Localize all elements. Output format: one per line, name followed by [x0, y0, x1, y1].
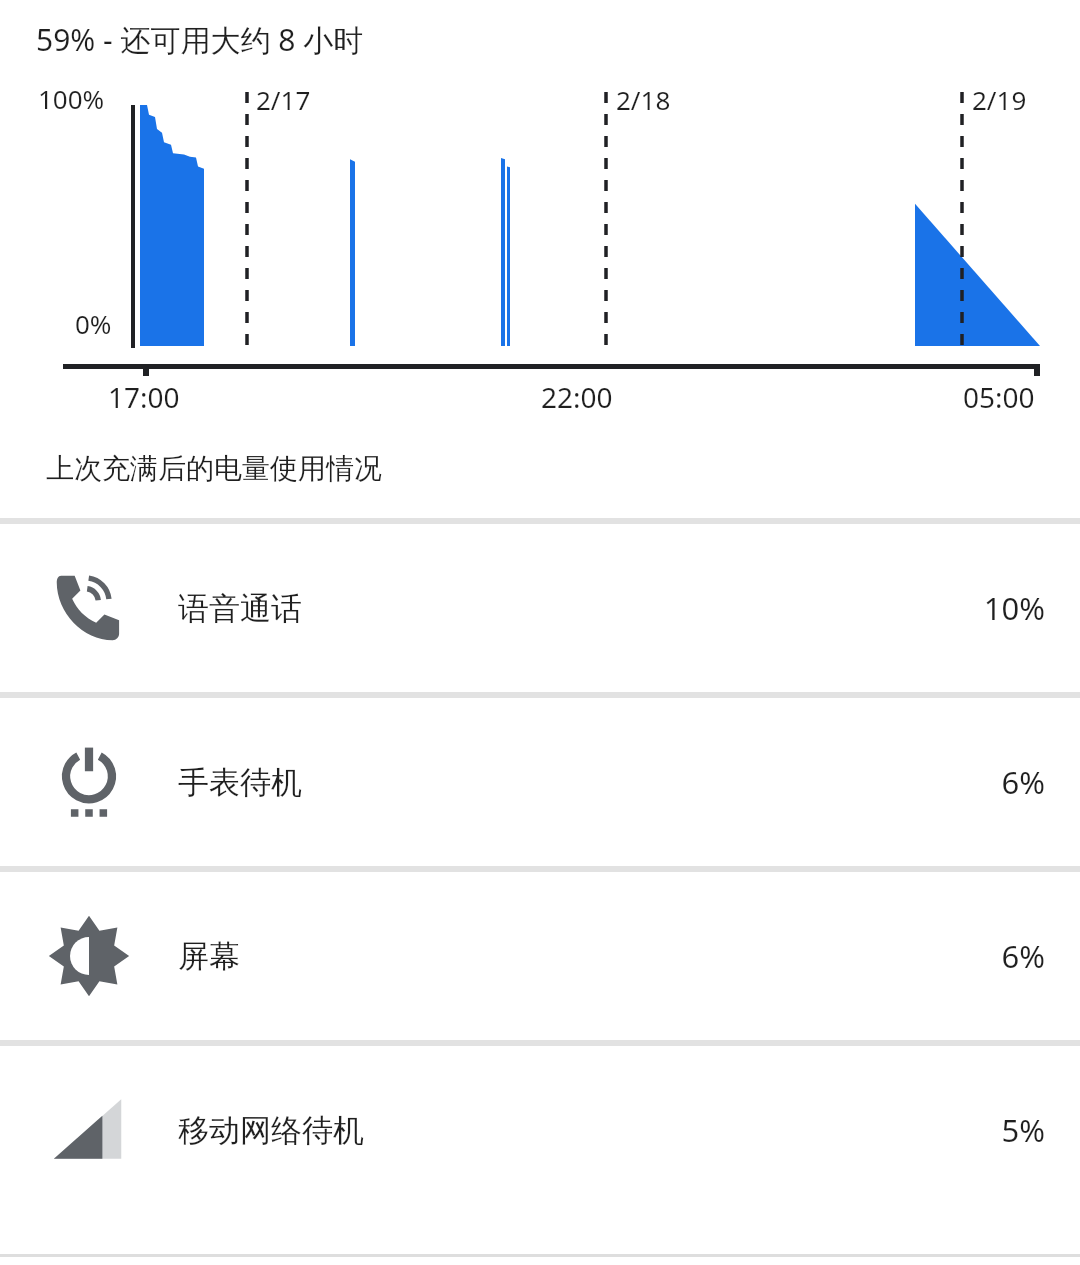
staticText: 22:00: [541, 378, 613, 416]
other: Watch idle: [46, 739, 132, 825]
staticText: 语音通话: [178, 589, 983, 628]
other: Screen: [46, 913, 132, 999]
staticText: 59% - 还可用大约 8 小时: [36, 19, 364, 60]
staticText: 屏幕: [178, 937, 1001, 976]
staticText: 6%: [1001, 935, 1045, 977]
button[interactable]: Watch idle: [0, 698, 1080, 866]
staticText: 上次充满后的电量使用情况: [46, 451, 382, 486]
staticText: 17:00: [108, 378, 180, 416]
button[interactable]: Screen: [0, 872, 1080, 1040]
staticText: 2/19: [972, 82, 1027, 117]
staticText: 10%: [983, 587, 1045, 629]
staticText: 05:00: [963, 378, 1035, 416]
button[interactable]: Voice call: [0, 524, 1080, 692]
other: Mobile network idle: [46, 1087, 132, 1173]
staticText: 移动网络待机: [178, 1111, 1001, 1150]
other: Voice call: [46, 565, 132, 651]
staticText: 6%: [1001, 761, 1045, 803]
staticText: 0%: [75, 306, 112, 341]
staticText: 手表待机: [178, 763, 1001, 802]
staticText: 5%: [1001, 1109, 1045, 1151]
button[interactable]: Mobile network idle: [0, 1046, 1080, 1214]
staticText: 2/18: [616, 82, 671, 117]
staticText: 2/17: [256, 82, 311, 117]
staticText: 100%: [38, 81, 105, 116]
